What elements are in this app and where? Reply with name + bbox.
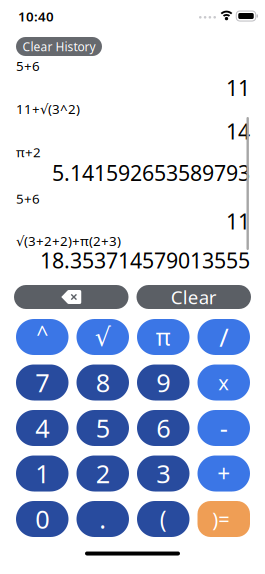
button[interactable]: -	[197, 410, 250, 446]
staticText: π+2	[16, 143, 41, 161]
staticText: 9	[156, 366, 170, 399]
button[interactable]: 8	[76, 364, 129, 400]
button[interactable]: )=	[197, 501, 250, 537]
staticText: 14	[226, 117, 250, 145]
staticText: +	[217, 458, 230, 488]
button[interactable]: /	[197, 319, 250, 355]
staticText: 5.141592653589793	[52, 158, 250, 187]
staticText: )=	[212, 506, 229, 532]
staticText: 4	[35, 411, 49, 445]
staticText: 11+√(3^2)	[16, 100, 80, 118]
button[interactable]: x	[197, 364, 250, 400]
button[interactable]: π	[137, 319, 189, 355]
staticText: √(3+2+2)+π(2+3)	[16, 232, 121, 250]
staticText: √	[95, 323, 111, 351]
staticText: 6	[156, 411, 170, 445]
button[interactable]: +	[197, 455, 250, 491]
staticText: 1	[35, 457, 49, 490]
staticText: (	[160, 504, 167, 534]
button[interactable]: 1	[16, 455, 68, 491]
staticText: 11	[226, 73, 250, 102]
button[interactable]: √	[76, 319, 129, 355]
button[interactable]: ^	[16, 319, 68, 355]
staticText: 8	[96, 366, 110, 399]
staticText: π	[156, 322, 171, 352]
button[interactable]: 0	[16, 501, 68, 537]
staticText: Clear History	[22, 38, 95, 54]
staticText: 11	[226, 207, 250, 235]
staticText: 5+6	[16, 190, 40, 207]
staticText: 3	[156, 457, 170, 490]
staticText: 18.353714579013555	[40, 246, 250, 274]
button[interactable]: 5	[76, 410, 129, 446]
button[interactable]: Clear History	[16, 37, 102, 56]
button[interactable]: .	[76, 501, 129, 537]
button[interactable]: 2	[76, 455, 129, 491]
staticText: 5	[96, 411, 110, 445]
button[interactable]: 9	[137, 364, 189, 400]
staticText: 0	[35, 502, 49, 536]
button[interactable]: 3	[137, 455, 189, 491]
staticText: /	[219, 320, 228, 354]
staticText: x	[218, 369, 229, 396]
staticText: .	[99, 502, 106, 536]
button[interactable]: Backspace	[14, 285, 128, 309]
staticText: ^	[36, 319, 48, 348]
button[interactable]: 4	[16, 410, 68, 446]
button[interactable]: Clear	[136, 285, 251, 309]
staticText: 5+6	[16, 57, 40, 75]
staticText: 7	[35, 366, 49, 399]
staticText: 2	[96, 457, 110, 490]
button[interactable]: (	[137, 501, 189, 537]
staticText: -	[220, 411, 228, 445]
button[interactable]: 7	[16, 364, 68, 400]
staticText: 10:40	[18, 7, 54, 25]
button[interactable]: 6	[137, 410, 189, 446]
staticText: Clear	[171, 285, 217, 309]
